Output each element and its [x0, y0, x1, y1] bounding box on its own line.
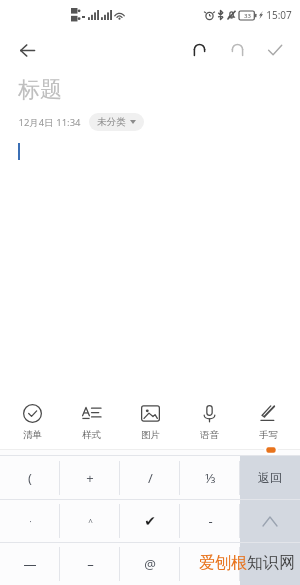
staticText: 未分类 — [97, 116, 126, 128]
button[interactable]: Undo — [184, 35, 214, 65]
staticText: – — [87, 555, 94, 573]
button[interactable]: · — [0, 500, 60, 542]
staticText: 12月4日 11:34 — [18, 116, 81, 129]
staticText: 样式 — [82, 429, 101, 441]
button[interactable]: Redo — [222, 35, 252, 65]
staticText: @ — [144, 555, 156, 573]
button[interactable]: Save — [260, 35, 290, 65]
staticText: — — [23, 555, 37, 573]
staticText: 标题 — [18, 76, 62, 104]
staticText: 15:07 — [266, 8, 292, 22]
staticText: ( — [28, 469, 32, 487]
button[interactable]: — — [0, 543, 60, 585]
button[interactable]: - — [180, 500, 240, 542]
button[interactable]: 语音 — [182, 399, 236, 445]
button[interactable]: 手写 — [241, 399, 295, 445]
button[interactable]: Keyboard key — [240, 500, 300, 542]
button[interactable]: @ — [120, 543, 180, 585]
staticText: ⅓ — [205, 469, 216, 487]
button[interactable]: ( — [0, 456, 60, 499]
staticText: - — [208, 512, 213, 530]
button[interactable]: 返回 — [240, 456, 300, 499]
button[interactable]: 清单 — [5, 399, 59, 445]
button[interactable]: Keyboard key — [240, 543, 300, 585]
staticText: 爱刨根 — [199, 553, 247, 573]
button[interactable]: ^ — [60, 500, 120, 542]
button[interactable]: + — [60, 456, 120, 499]
staticText: ^ — [88, 516, 93, 527]
staticText: 语音 — [200, 429, 219, 441]
button[interactable]: Back — [10, 33, 44, 67]
staticText: 手写 — [259, 429, 278, 441]
button[interactable]: 图片 — [123, 399, 177, 445]
staticText: 清单 — [23, 429, 42, 441]
button[interactable]: 样式 — [64, 399, 118, 445]
button[interactable]: / — [120, 456, 180, 499]
staticText: ✔ — [144, 513, 156, 529]
button[interactable]: 未分类 — [89, 113, 144, 131]
staticText: + — [86, 469, 94, 487]
staticText: 33 — [244, 12, 251, 20]
staticText: / — [148, 469, 153, 487]
staticText: · — [29, 516, 32, 527]
button[interactable]: ✔ — [120, 500, 180, 542]
button[interactable]: ⅓ — [180, 456, 240, 499]
button[interactable] — [180, 543, 240, 585]
staticText: 返回 — [258, 470, 282, 485]
staticText: 知识网 — [247, 553, 295, 573]
staticText: 图片 — [141, 429, 160, 441]
button[interactable]: – — [60, 543, 120, 585]
